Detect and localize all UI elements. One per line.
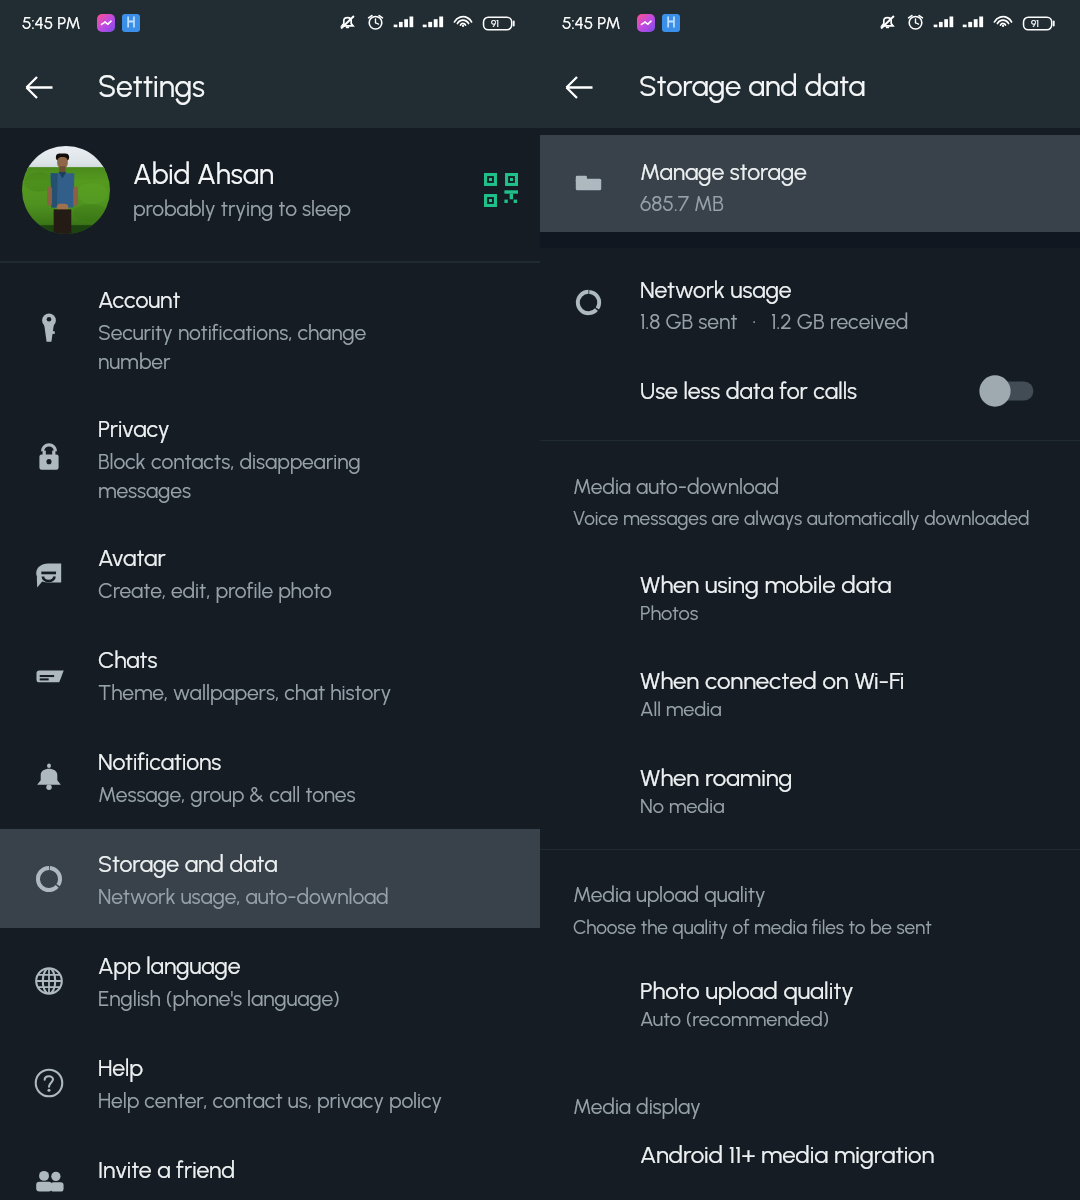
button[interactable] [540,644,1080,720]
staticText: Manage storage [640,158,807,186]
button[interactable] [0,828,540,930]
staticText: Storage and data [639,68,866,103]
staticText: messages [98,478,191,503]
button[interactable] [0,930,540,1032]
staticText: Android 11+ media migration [640,1140,935,1169]
staticText: Message, group & call tones [98,782,356,807]
button[interactable] [0,393,540,522]
staticText: H [127,15,136,31]
staticText: number [98,349,171,374]
staticText: Media upload quality [573,882,766,907]
button[interactable] [540,1118,1080,1172]
button[interactable] [540,741,1080,817]
staticText: Abid Ahsan [133,157,275,191]
staticText: H [667,15,676,31]
button[interactable] [540,548,1080,624]
staticText: Notifications [98,748,222,776]
button[interactable] [540,954,1080,1030]
staticText: 5:45 PM [562,13,621,33]
staticText: Help center, contact us, privacy policy [98,1088,443,1113]
staticText: Settings [98,68,205,104]
button[interactable] [0,522,540,624]
staticText: Storage and data [98,850,278,878]
staticText: Photo upload quality [640,976,854,1005]
button[interactable] [0,128,540,261]
staticText: Account [98,286,181,314]
staticText: Privacy [98,415,170,443]
staticText: Auto (recommended) [640,1007,830,1031]
staticText: Network usage [640,276,792,304]
button[interactable]: Back [554,62,604,112]
staticText: Media display [573,1094,701,1119]
staticText: Choose the quality of media files to be … [573,916,932,939]
button[interactable]: QR code [478,167,524,213]
staticText: Chats [98,646,158,674]
staticText: 5:45 PM [22,13,81,33]
button[interactable] [540,355,1080,427]
staticText: When roaming [640,763,793,792]
staticText: English (phone's language) [98,986,340,1011]
button[interactable] [0,726,540,828]
staticText: Photos [640,601,699,625]
button[interactable] [0,1032,540,1134]
staticText: No media [640,794,725,818]
button[interactable] [0,624,540,726]
staticText: When connected on Wi-Fi [640,666,905,695]
staticText: Theme, wallpapers, chat history [98,680,392,705]
staticText: Help [98,1054,144,1082]
staticText: 91 [1031,17,1039,29]
staticText: Network usage, auto-download [98,884,389,909]
staticText: 685.7 MB [640,191,724,216]
staticText: 1.8 GB sent · 1.2 GB received [640,309,909,334]
staticText: Invite a friend [98,1156,236,1184]
staticText: Voice messages are always automatically … [573,507,1030,530]
staticText: App language [98,952,241,980]
staticText: Media auto-download [573,474,780,499]
staticText: probably trying to sleep [133,196,351,221]
button[interactable]: Back [14,62,64,112]
staticText: Block contacts, disappearing [98,449,361,474]
button[interactable] [0,1134,540,1200]
staticText: When using mobile data [640,570,892,599]
button[interactable] [540,135,1080,232]
staticText: Avatar [98,544,166,572]
staticText: Use less data for calls [640,377,857,405]
button[interactable] [540,250,1080,334]
staticText: All media [640,697,722,721]
staticText: Create, edit, profile photo [98,578,332,603]
button[interactable] [0,264,540,393]
staticText: Security notifications, change [98,320,367,345]
staticText: 91 [491,17,499,29]
